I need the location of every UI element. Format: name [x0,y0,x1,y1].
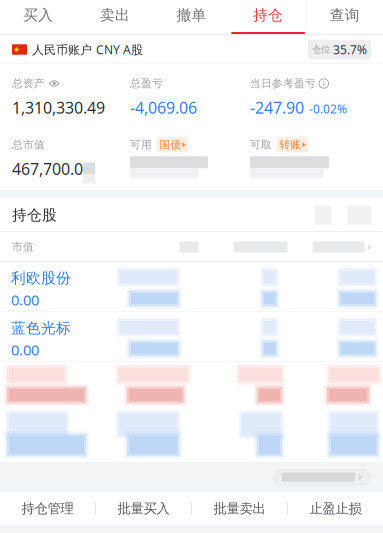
button[interactable]: 蓝色光标 [0,312,383,362]
staticText: 35.7% [333,41,367,57]
staticText: 1,310,330.49 [12,97,105,118]
staticText: 总资产 [12,77,45,90]
staticText: 卖出 [100,6,130,24]
staticText: 批量买入 [117,500,169,517]
button[interactable] [0,412,383,462]
staticText: 国债 [159,138,181,151]
button[interactable]: 止盈止损 [288,492,383,525]
staticText: 撤单 [176,6,206,24]
staticText: 持仓股 [12,206,57,224]
staticText: 蓝色光标 [11,319,71,337]
button[interactable]: 持仓 [230,0,306,35]
staticText: 当日参考盈亏 [250,77,316,90]
button[interactable]: 买入 [0,0,77,35]
staticText: -4,069.06 [130,97,197,118]
staticText: -247.90 [250,97,304,118]
staticText: 467,700.0 [12,158,83,179]
staticText: 买入 [23,6,53,24]
staticText: 人民币账户 CNY A股 [32,41,143,57]
button[interactable]: 持仓管理 [0,492,95,525]
button[interactable]: 撤单 [153,0,230,35]
staticText: 查询 [330,6,360,24]
button[interactable]: 国债 [157,137,188,152]
button[interactable]: 利欧股份 [0,262,383,312]
button[interactable]: 批量卖出 [192,492,287,525]
staticText: 止盈止损 [309,500,361,517]
staticText: 总市值 [12,138,45,151]
staticText: -0.02% [309,101,347,117]
button[interactable]: 卖出 [77,0,153,35]
staticText: 总盈亏 [130,77,163,90]
staticText: 可用 [130,138,152,151]
staticText: ★ [13,45,20,54]
button[interactable] [0,362,383,412]
staticText: 市值 [12,240,34,253]
staticText: 利欧股份 [11,269,71,287]
staticText: 仓位 [312,44,330,55]
button[interactable]: 查询 [306,0,383,35]
button[interactable]: 批量买入 [96,492,191,525]
staticText: 转账 [279,138,301,151]
staticText: 持仓 [253,6,283,24]
staticText: 0.00 [11,290,39,309]
button[interactable]: 转账 [277,137,308,152]
staticText: 批量卖出 [213,500,265,517]
staticText: 0.00 [11,340,39,359]
staticText: 持仓管理 [21,500,73,517]
button[interactable]: 查看已清仓股票 [273,468,371,485]
staticText: 可取 [250,138,272,151]
